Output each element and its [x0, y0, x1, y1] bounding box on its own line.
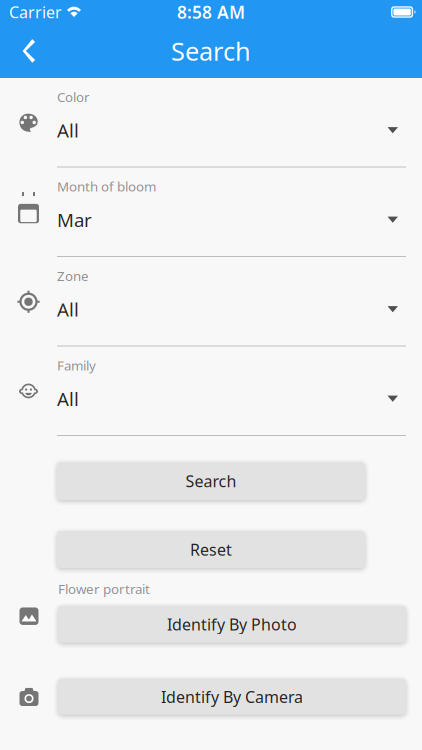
- button[interactable]: Color: [0, 78, 422, 167]
- button[interactable]: Family: [0, 346, 422, 436]
- staticText: Search: [185, 470, 236, 492]
- button[interactable]: Back: [6, 28, 52, 74]
- staticText: All: [57, 297, 79, 322]
- staticText: Identify By Photo: [167, 614, 297, 635]
- staticText: Reset: [190, 539, 232, 560]
- staticText: Identify By Camera: [161, 686, 303, 707]
- staticText: Color: [57, 88, 90, 106]
- button[interactable]: Zone: [0, 257, 422, 346]
- staticText: 8:58 AM: [177, 0, 245, 23]
- staticText: Zone: [57, 267, 89, 285]
- button[interactable]: Identify By Camera: [58, 679, 406, 715]
- staticText: All: [57, 386, 79, 411]
- staticText: Flower portrait: [58, 580, 150, 598]
- button[interactable]: Reset: [57, 531, 365, 568]
- staticText: Family: [57, 356, 96, 374]
- button[interactable]: Search: [57, 462, 365, 500]
- staticText: Search: [171, 34, 251, 68]
- staticText: All: [57, 118, 79, 143]
- staticText: Month of bloom: [57, 177, 156, 195]
- staticText: Carrier: [9, 1, 62, 23]
- staticText: Mar: [57, 207, 92, 232]
- button[interactable]: Month of bloom: [0, 167, 422, 257]
- button[interactable]: Identify By Photo: [58, 606, 406, 643]
